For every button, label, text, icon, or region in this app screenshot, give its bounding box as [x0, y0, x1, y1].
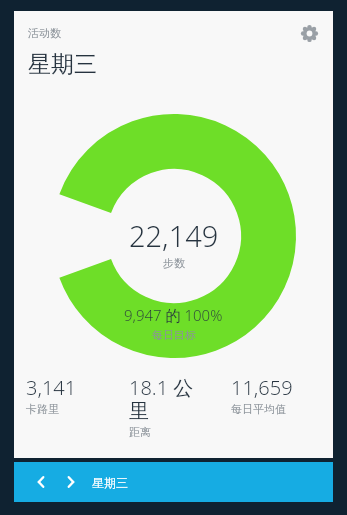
staticText: 每日目标 — [152, 328, 196, 342]
button[interactable]: Previous day — [14, 462, 333, 502]
button[interactable]: Previous day — [30, 471, 52, 493]
staticText: 星期三 — [28, 50, 97, 79]
staticText: 卡路里 — [26, 402, 59, 416]
button[interactable]: Settings — [295, 19, 323, 47]
staticText: 22,149 — [129, 216, 219, 255]
button[interactable]: 3,141 — [22, 374, 108, 416]
staticText: 9,947 的 100% — [124, 305, 223, 325]
button[interactable]: Next day — [60, 471, 82, 493]
staticText: 每日平均值 — [231, 402, 286, 416]
button[interactable]: 18.1 公里 — [125, 374, 211, 439]
staticText: 星期三 — [92, 475, 128, 490]
staticText: 距离 — [129, 425, 151, 439]
staticText: 3,141 — [26, 374, 77, 401]
staticText: 活动数 — [28, 26, 61, 40]
button[interactable]: 11,659 — [227, 374, 325, 416]
staticText: 步数 — [163, 256, 185, 270]
staticText: 18.1 公里 — [129, 374, 211, 424]
staticText: 11,659 — [231, 374, 293, 401]
